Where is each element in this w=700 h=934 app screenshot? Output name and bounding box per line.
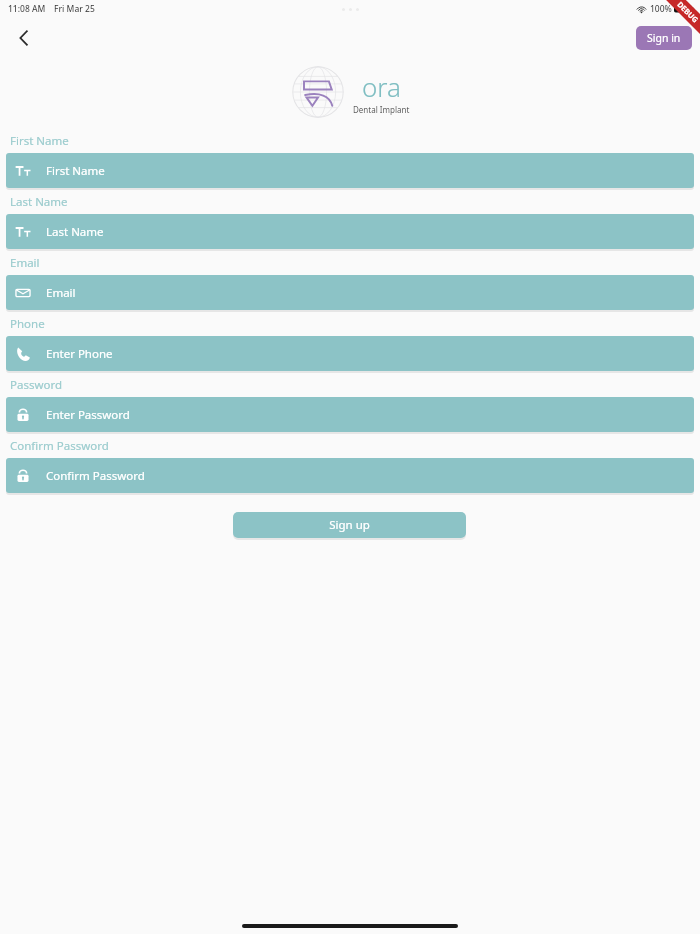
staticText: Enter Password (46, 407, 130, 423)
button[interactable]: Enter Phone (6, 336, 694, 371)
staticText: Sign up (329, 517, 370, 533)
button[interactable]: First Name (6, 153, 694, 188)
staticText: Email (10, 255, 40, 271)
staticText: Last Name (46, 224, 104, 240)
staticText: Phone (10, 316, 45, 332)
staticText: Confirm Password (10, 438, 109, 454)
staticText: DEBUG (675, 0, 700, 25)
staticText: Last Name (10, 194, 68, 210)
staticText: ora (362, 69, 402, 104)
staticText: Email (46, 285, 76, 301)
staticText: Fri Mar 25 (54, 3, 95, 15)
staticText: First Name (46, 163, 105, 179)
staticText: Confirm Password (46, 468, 145, 484)
staticText: Password (10, 377, 63, 393)
button[interactable]: Enter Password (6, 397, 694, 432)
staticText: First Name (10, 133, 69, 149)
button[interactable]: Email (6, 275, 694, 310)
button[interactable]: Last Name (6, 214, 694, 249)
staticText: Enter Phone (46, 346, 113, 362)
staticText: Sign in (647, 31, 681, 45)
staticText: Dental Implant (353, 104, 410, 115)
button[interactable]: Sign in (636, 26, 692, 50)
button[interactable]: Sign up (233, 512, 466, 538)
staticText: 11:08 AM (8, 3, 46, 15)
staticText: 100% (650, 3, 672, 15)
button[interactable]: Confirm Password (6, 458, 694, 493)
button[interactable]: Back (7, 21, 41, 55)
